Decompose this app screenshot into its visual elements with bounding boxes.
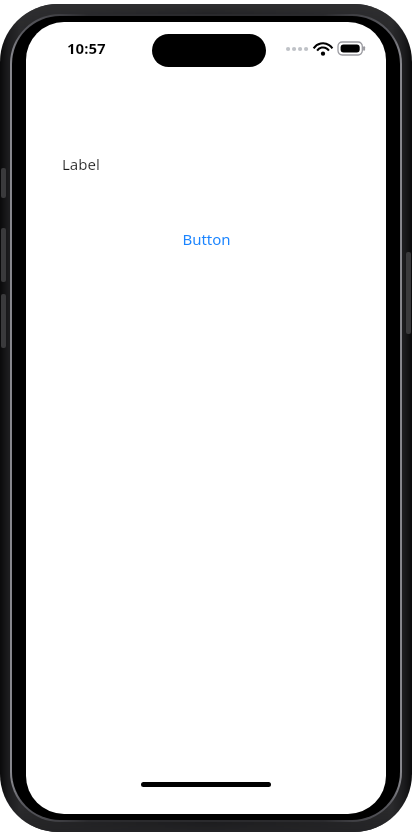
- staticText: Label: [62, 154, 100, 174]
- button[interactable]: Button: [172, 225, 241, 253]
- staticText: 10:57: [67, 38, 106, 58]
- other: Home indicator: [141, 782, 271, 787]
- staticText: Button: [182, 229, 231, 249]
